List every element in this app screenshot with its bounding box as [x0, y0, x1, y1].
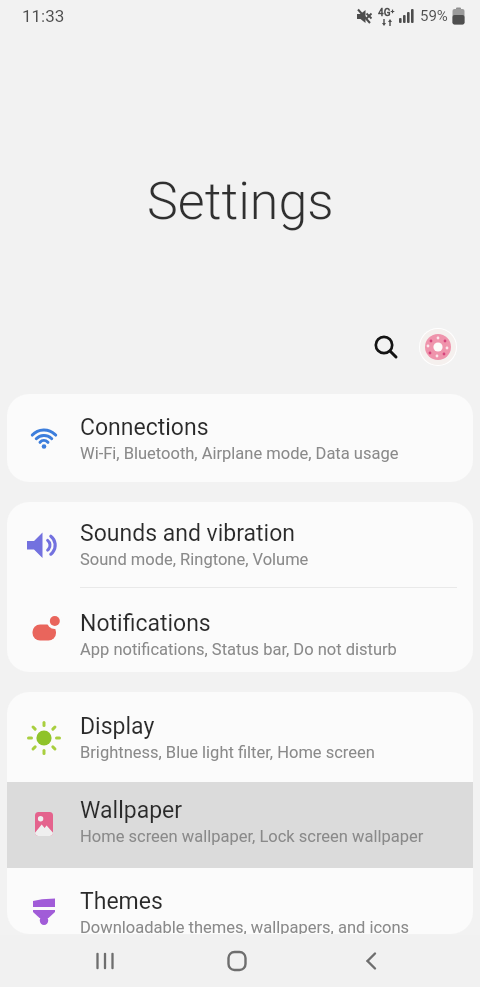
staticText: Connections [80, 414, 209, 441]
button[interactable] [367, 328, 405, 366]
button[interactable]: Sounds and vibration [7, 502, 473, 587]
button[interactable]: Notifications [7, 588, 473, 672]
staticText: Sounds and vibration [80, 520, 296, 547]
button[interactable] [347, 937, 395, 985]
button[interactable]: Display [7, 692, 473, 782]
staticText: Wallpaper [80, 797, 183, 824]
staticText: 11:33 [22, 6, 65, 26]
staticText: Wi-Fi, Bluetooth, Airplane mode, Data us… [80, 444, 399, 463]
staticText: Sound mode, Ringtone, Volume [80, 550, 309, 569]
staticText: 4G⁺ [378, 7, 395, 19]
staticText: Brightness, Blue light filter, Home scre… [80, 743, 375, 762]
staticText: Home screen wallpaper, Lock screen wallp… [80, 827, 424, 846]
staticText: 59% [420, 7, 448, 25]
button[interactable]: Connections [7, 394, 473, 482]
staticText: Display [80, 713, 155, 740]
staticText: Themes [80, 888, 163, 915]
staticText: App notifications, Status bar, Do not di… [80, 640, 397, 659]
button[interactable]: Themes [7, 870, 473, 934]
button[interactable]: Wallpaper [7, 782, 473, 868]
button[interactable] [81, 937, 129, 985]
staticText: Downloadable themes, wallpapers, and ico… [80, 918, 410, 934]
staticText: Notifications [80, 610, 211, 637]
button[interactable] [419, 328, 457, 366]
button[interactable] [213, 937, 261, 985]
staticText: Settings [147, 171, 334, 232]
